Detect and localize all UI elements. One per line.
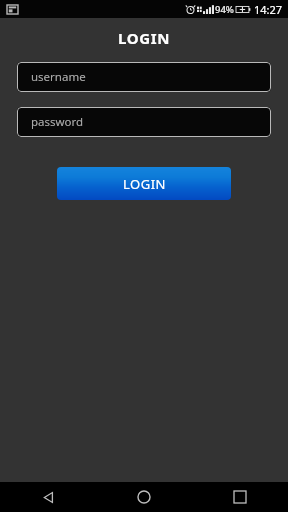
button[interactable]: LOGIN	[57, 167, 231, 200]
staticText: 94%	[215, 3, 234, 16]
button[interactable]: Home	[96, 482, 192, 512]
button[interactable]: Recent apps	[192, 482, 288, 512]
button[interactable]: password	[17, 107, 271, 137]
staticText: LOGIN	[118, 28, 170, 48]
button[interactable]: username	[17, 62, 271, 92]
button[interactable]: Back	[0, 482, 96, 512]
staticText: username	[31, 69, 86, 85]
staticText: LOGIN	[123, 175, 166, 193]
staticText: 14:27	[254, 2, 283, 17]
staticText: password	[31, 114, 84, 130]
